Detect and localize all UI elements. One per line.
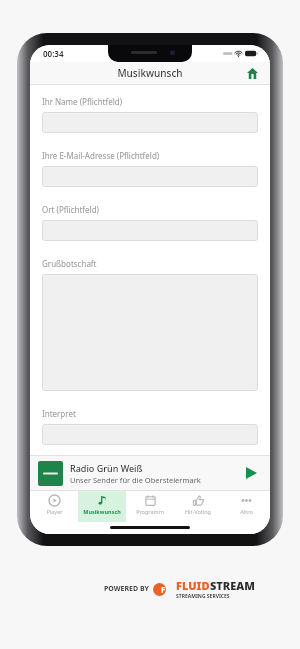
staticText: 00:34 xyxy=(43,48,64,59)
staticText: Altro xyxy=(240,508,253,515)
staticText: POWERED BY xyxy=(104,584,149,594)
button[interactable]: Altro xyxy=(222,491,270,522)
button[interactable] xyxy=(42,424,258,445)
staticText: Radio Grün Weiß xyxy=(70,462,143,474)
button[interactable] xyxy=(42,220,258,241)
staticText: FLUID xyxy=(176,578,210,593)
staticText: Musikwunsch xyxy=(117,66,183,80)
staticText: Unser Sender für die Obersteiermark xyxy=(70,475,201,485)
staticText: STREAM xyxy=(210,578,255,593)
staticText: Musikwunsch xyxy=(83,508,121,515)
staticText: Ort (Pflichtfeld) xyxy=(42,204,99,215)
staticText: Hit-Voting xyxy=(185,508,211,515)
staticText: Player xyxy=(46,508,63,515)
button[interactable]: Player xyxy=(30,491,78,522)
button[interactable]: Play xyxy=(240,462,262,484)
button[interactable]: Radio Grün Weiß xyxy=(38,456,262,490)
staticText: Ihr Name (Pflichtfeld) xyxy=(42,96,123,107)
button[interactable] xyxy=(42,112,258,133)
staticText: Ihre E-Mail-Adresse (Pflichtfeld) xyxy=(42,150,160,161)
staticText: Programm xyxy=(136,508,164,515)
staticText: Grußbotschaft xyxy=(42,258,97,269)
button[interactable] xyxy=(42,166,258,187)
button[interactable]: Musikwunsch xyxy=(78,491,126,522)
staticText: F xyxy=(161,584,166,595)
button[interactable] xyxy=(42,274,258,391)
button[interactable]: Programm xyxy=(126,491,174,522)
staticText: Interpret xyxy=(42,408,76,419)
button[interactable]: Hit-Voting xyxy=(174,491,222,522)
button[interactable]: Home xyxy=(243,64,261,82)
staticText: STREAMING SERVICES xyxy=(176,593,230,600)
